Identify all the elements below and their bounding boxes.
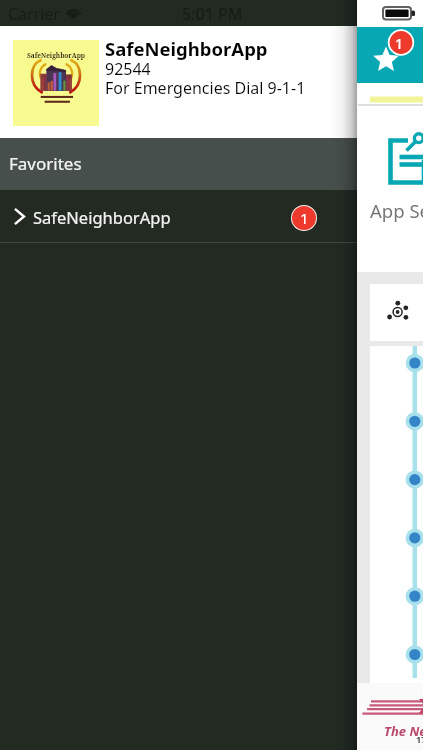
staticText: The Next G: [384, 722, 423, 740]
staticText: App Settings: [370, 198, 423, 223]
staticText: SafeNeighborApp: [27, 51, 86, 60]
staticText: 17: [416, 733, 423, 745]
staticText: 5:01 PM: [182, 3, 243, 25]
staticText: Carrier: [8, 3, 61, 25]
staticText: 1: [300, 208, 309, 228]
staticText: For Emergencies Dial 9-1-1: [105, 77, 306, 99]
staticText: 1: [395, 34, 404, 53]
staticText: Favorites: [9, 152, 82, 175]
staticText: SafeNeighborApp: [105, 36, 268, 61]
staticText: SafeNeighborApp: [33, 206, 171, 228]
staticText: 92544: [105, 58, 151, 80]
button[interactable]: SafeNeighborApp: [0, 190, 357, 242]
